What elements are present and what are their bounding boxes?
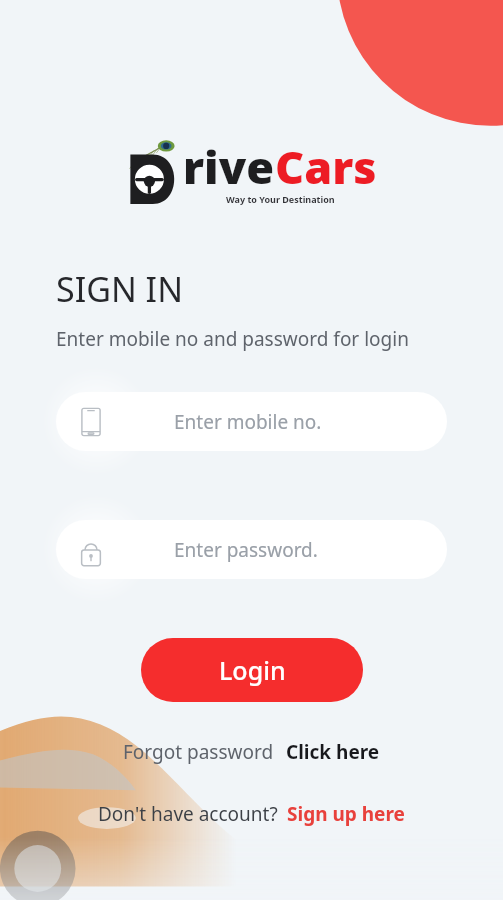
staticText: Enter mobile no. (174, 409, 322, 435)
staticText: Way to Your Destination (226, 193, 335, 205)
staticText: rive (183, 136, 275, 197)
staticText: Don't have account? (98, 801, 278, 827)
staticText: Forgot password (123, 739, 274, 765)
button[interactable]: Click here (286, 739, 380, 765)
staticText: Login (219, 653, 286, 687)
staticText: Click here (286, 739, 380, 765)
staticText: Enter mobile no and password for login (56, 326, 409, 352)
staticText: Cars (275, 136, 377, 197)
staticText: Sign up here (287, 801, 405, 827)
button[interactable]: Sign up here (287, 801, 405, 827)
button[interactable]: Login (141, 638, 363, 702)
button[interactable]: Enter mobile no. (56, 392, 447, 451)
staticText: Enter password. (174, 537, 318, 563)
button[interactable]: Enter password. (56, 520, 447, 579)
staticText: SIGN IN (56, 266, 183, 312)
